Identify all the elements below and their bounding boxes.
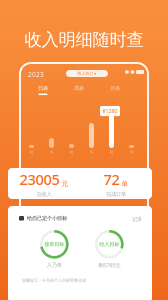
staticText: 2023 <box>28 70 44 79</box>
staticText: 剩5785元 <box>98 262 120 269</box>
staticText: 周一 <box>29 150 33 160</box>
staticText: 月表 <box>110 85 120 92</box>
staticText: 接单目标 <box>44 241 64 248</box>
staticText: 周一 <box>69 150 73 160</box>
staticText: 收入目标 <box>99 241 119 248</box>
button[interactable]: 周表 <box>61 85 97 95</box>
button[interactable]: 日表 <box>25 85 61 95</box>
staticText: 总收入 <box>36 191 51 198</box>
staticText: ¥1280 <box>102 107 117 115</box>
button[interactable]: 月表 <box>97 85 133 95</box>
staticText: 日表 <box>38 85 48 92</box>
staticText: 温馨提示：今天的个人目标即将达成 <box>22 278 86 283</box>
staticText: 单 <box>121 180 128 188</box>
staticText: 收入明细随时查 <box>24 29 143 50</box>
staticText: 周一 <box>109 150 113 160</box>
staticText: 23005 <box>19 169 59 189</box>
staticText: 周一 <box>89 150 93 160</box>
staticText: 收入统计 ▾ <box>77 71 96 76</box>
staticText: 给自己定个小目标 <box>27 215 67 222</box>
staticText: 72 <box>103 169 119 189</box>
staticText: 元 <box>61 180 68 188</box>
staticText: 周表 <box>74 85 84 92</box>
staticText: 入乃单 <box>47 262 62 268</box>
staticText: 完成订单 <box>106 191 126 198</box>
staticText: 记录 <box>132 216 142 223</box>
button[interactable]: 记录 <box>132 216 142 223</box>
staticText: 周一 <box>129 150 133 160</box>
staticText: 周一 <box>49 150 53 160</box>
